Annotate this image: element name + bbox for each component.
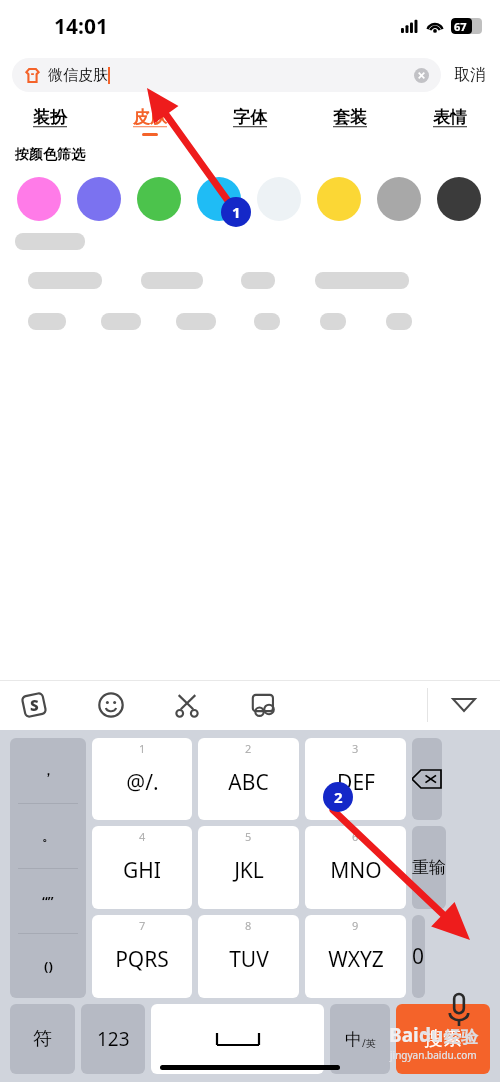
button[interactable]: Cut <box>174 692 200 718</box>
button[interactable]: 123 <box>81 1004 145 1074</box>
button[interactable]: 1 <box>92 738 192 820</box>
staticText: 123 <box>97 1026 130 1052</box>
button[interactable]: 8 <box>198 915 299 998</box>
staticText: 3 <box>352 741 359 756</box>
button[interactable]: 搜索 <box>396 1004 490 1074</box>
staticText: 搜索 <box>424 1027 462 1051</box>
staticText: 0 <box>412 942 425 971</box>
staticText: ABC <box>228 768 269 797</box>
button[interactable]: Color filter <box>437 177 481 221</box>
staticText: DEF <box>337 768 375 797</box>
button[interactable]: 表情 <box>400 98 500 140</box>
staticText: WXYZ <box>328 945 384 974</box>
staticText: 14:01 <box>54 12 108 41</box>
staticText: 1 <box>139 741 146 756</box>
staticText: TUV <box>229 945 269 974</box>
button[interactable]: 取消 <box>452 63 488 87</box>
button[interactable]: Color filter <box>137 177 181 221</box>
button[interactable]: 皮肤 <box>100 98 200 140</box>
staticText: 8 <box>245 918 252 933</box>
staticText: S <box>30 695 39 715</box>
staticText: 9 <box>352 918 359 933</box>
staticText: 皮肤 <box>133 107 167 128</box>
staticText: du <box>419 1022 444 1048</box>
staticText: 套装 <box>333 107 367 128</box>
staticText: PQRS <box>115 945 169 974</box>
button[interactable]: Delete <box>412 738 442 820</box>
button[interactable]: Hide keyboard <box>428 680 500 730</box>
button[interactable]: Sogou <box>20 691 48 719</box>
button[interactable]: Color filter <box>257 177 301 221</box>
staticText: 中 <box>345 1029 362 1050</box>
button[interactable]: Space <box>151 1004 324 1074</box>
staticText: “” <box>42 892 54 910</box>
staticText: /英 <box>362 1036 376 1050</box>
button[interactable]: Clear <box>414 68 429 83</box>
staticText: 重输 <box>412 857 446 878</box>
staticText: @/. <box>126 768 159 797</box>
staticText: 取消 <box>454 65 486 85</box>
staticText: 2 <box>245 741 252 756</box>
staticText: ， <box>42 763 54 778</box>
staticText: 2 <box>334 787 343 807</box>
button[interactable]: 微信皮肤 <box>12 58 441 92</box>
button[interactable]: 3 <box>305 738 406 820</box>
button[interactable]: 装扮 <box>0 98 100 140</box>
button[interactable]: 5 <box>198 826 299 909</box>
staticText: 符 <box>33 1027 52 1051</box>
button[interactable]: 0 <box>412 915 425 998</box>
staticText: 67 <box>454 19 467 34</box>
staticText: 7 <box>139 918 146 933</box>
staticText: () <box>44 957 53 975</box>
button[interactable]: Color filter <box>77 177 121 221</box>
staticText: JKL <box>234 856 264 885</box>
staticText: Bai <box>389 1022 419 1048</box>
staticText: 经验 <box>444 1027 478 1048</box>
button[interactable]: Color filter <box>377 177 421 221</box>
staticText: 5 <box>245 829 252 844</box>
staticText: 4 <box>139 829 146 844</box>
button[interactable]: 中 <box>330 1004 390 1074</box>
button[interactable]: 4 <box>92 826 192 909</box>
staticText: 。 <box>42 829 54 844</box>
staticText: 6 <box>352 829 359 844</box>
button[interactable]: Image <box>250 691 278 719</box>
button[interactable]: Color filter <box>317 177 361 221</box>
staticText: 表情 <box>433 107 467 128</box>
button[interactable]: 2 <box>198 738 299 820</box>
button[interactable]: 9 <box>305 915 406 998</box>
staticText: 字体 <box>233 107 267 128</box>
button[interactable]: 6 <box>305 826 406 909</box>
button[interactable]: 7 <box>92 915 192 998</box>
button[interactable]: 字体 <box>200 98 300 140</box>
button[interactable]: 重输 <box>412 826 446 909</box>
staticText: GHI <box>123 856 161 885</box>
button[interactable]: Emoji <box>98 692 124 718</box>
button[interactable]: Color filter <box>197 177 241 221</box>
staticText: 1 <box>232 202 241 222</box>
staticText: jingyan.baidu.com <box>390 1048 477 1062</box>
button[interactable]: 符 <box>10 1004 75 1074</box>
button[interactable]: ， <box>10 738 86 998</box>
staticText: 微信皮肤 <box>48 66 108 85</box>
staticText: MNO <box>330 856 382 885</box>
button[interactable]: Color filter <box>17 177 61 221</box>
staticText: 按颜色筛选 <box>15 146 85 164</box>
button[interactable]: 套装 <box>300 98 400 140</box>
staticText: 装扮 <box>33 107 67 128</box>
